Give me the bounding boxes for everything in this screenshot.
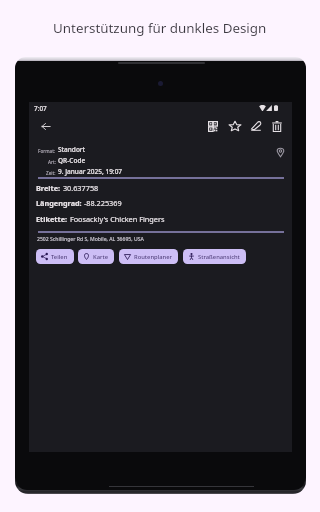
staticText: Längengrad:	[36, 198, 82, 208]
staticText: Foosackly's Chicken Fingers	[68, 214, 165, 224]
button[interactable]: Routenplaner	[119, 249, 178, 264]
staticText: Karte	[93, 253, 108, 261]
button[interactable]: Bearbeiten	[247, 117, 265, 135]
staticText: 2502 Schillinger Rd S, Mobile, AL 36695,…	[37, 236, 144, 243]
staticText: Format:	[38, 148, 56, 154]
staticText: Routenplaner	[134, 253, 172, 261]
button[interactable]: Breite:	[36, 181, 282, 195]
staticText: Breite:	[36, 183, 61, 193]
button[interactable]: QR-Code anzeigen	[204, 117, 222, 135]
staticText: Standort	[58, 145, 86, 154]
staticText: Unterstützung für dunkles Design	[53, 19, 267, 37]
button[interactable]: Karte	[78, 249, 114, 264]
staticText: Teilen	[51, 253, 68, 261]
staticText: 7:07	[34, 104, 47, 113]
button[interactable]: Straßenansicht	[183, 249, 246, 264]
staticText: 9. Januar 2025, 19:07	[58, 167, 123, 176]
staticText: 30.637758	[61, 183, 99, 193]
button[interactable]: Etikette:	[36, 212, 282, 226]
staticText: Etikette:	[36, 214, 68, 224]
button[interactable]: Längengrad:	[36, 196, 282, 210]
button[interactable]: Favorit	[226, 117, 244, 135]
button[interactable]: Löschen	[268, 117, 286, 135]
button[interactable]: Teilen	[36, 249, 74, 264]
staticText: Straßenansicht	[198, 253, 240, 261]
staticText: Art:	[48, 159, 56, 165]
staticText: QR-Code	[58, 156, 86, 165]
button[interactable]: Auf Karte zeigen	[271, 143, 289, 161]
staticText: Zeit:	[46, 170, 56, 176]
button[interactable]: Zurück	[37, 117, 55, 135]
staticText: -88.225369	[82, 198, 122, 208]
